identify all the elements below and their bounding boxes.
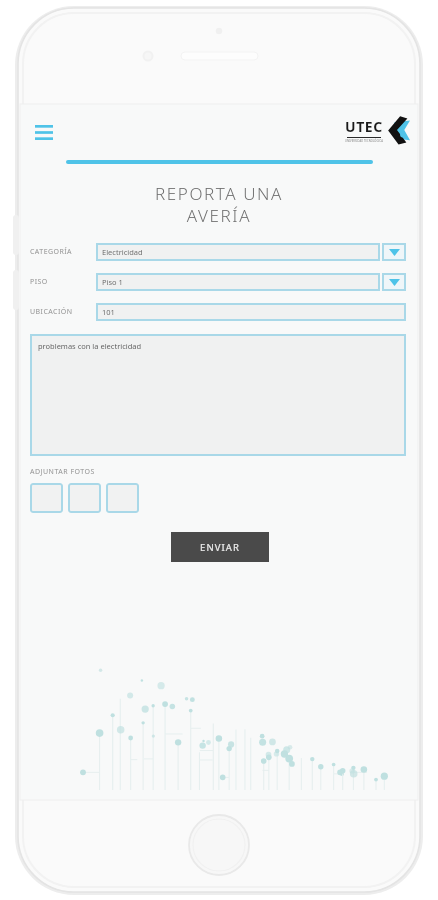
button[interactable]: Electricidad: [96, 243, 406, 261]
button[interactable]: Add photo 2: [68, 483, 101, 513]
other: Open PISO dropdown: [382, 273, 406, 291]
other: Open CATEGORÍA dropdown: [382, 243, 406, 261]
staticText: CATEGORÍA: [30, 247, 73, 257]
button[interactable]: UTEC logo: [345, 115, 410, 145]
staticText: problemas con la electricidad: [38, 341, 142, 351]
staticText: ENVIAR: [200, 541, 241, 554]
button[interactable]: ENVIAR: [171, 532, 269, 562]
staticText: UBICACIÓN: [30, 307, 73, 317]
button[interactable]: problemas con la electricidad: [30, 334, 406, 456]
button[interactable]: Add photo 1: [30, 483, 63, 513]
button[interactable]: 101: [96, 303, 406, 321]
button[interactable]: Piso 1: [96, 273, 406, 291]
staticText: PISO: [30, 277, 48, 287]
button[interactable]: Add photo 3: [106, 483, 139, 513]
staticText: UNIVERSIDAD TECNOLÓGICA: [345, 139, 383, 143]
staticText: 101: [102, 307, 115, 317]
staticText: UTEC: [345, 117, 383, 136]
staticText: Piso 1: [102, 277, 123, 287]
button[interactable]: Menu: [27, 115, 61, 149]
staticText: Electricidad: [102, 247, 143, 257]
staticText: REPORTA UNA AVERÍA: [20, 182, 418, 227]
staticText: ADJUNTAR FOTOS: [30, 467, 95, 477]
